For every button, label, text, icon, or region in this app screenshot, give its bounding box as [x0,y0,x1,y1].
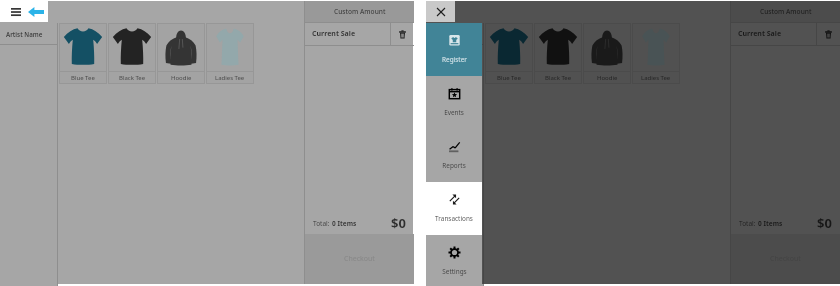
button[interactable]: Hoodie [157,23,205,84]
staticText: Ladies Tee [641,74,671,82]
button[interactable]: Hoodie [583,23,631,84]
staticText: Hoodie [171,74,192,82]
button[interactable]: Events [426,76,482,129]
staticText: Ladies Tee [215,74,245,82]
button[interactable]: Black Tee [108,23,156,84]
button[interactable]: Reports [426,129,482,182]
button[interactable]: Blue Tee [485,23,533,84]
staticText: Artist Name [6,30,43,38]
staticText: Transactions [435,214,473,223]
staticText: Current Sale [738,29,816,39]
staticText: 0 Items [758,219,783,228]
staticText: $0 [817,214,832,232]
staticText: Custom Amount [334,7,386,16]
staticText: $0 [391,214,406,232]
button[interactable]: Transactions [426,182,482,235]
staticText: Hoodie [597,74,618,82]
staticText: Artist Name [432,30,469,38]
staticText: Settings [442,267,467,276]
button[interactable]: Blue Tee [59,23,107,84]
button[interactable]: Artist Name [426,23,483,44]
button[interactable]: Custom Amount [731,1,840,22]
button[interactable]: Close navigation menu [426,1,455,22]
button[interactable]: Ladies Tee [632,23,680,84]
button[interactable]: Register [426,23,482,76]
staticText: Reports [442,161,466,170]
staticText: Total: [739,219,758,228]
staticText: Black Tee [119,74,146,82]
staticText: Blue Tee [71,74,95,82]
staticText: 0 Items [332,219,357,228]
staticText: Current Sale [312,29,390,39]
button[interactable]: Delete sale [817,23,840,45]
button[interactable]: Delete sale [391,23,414,45]
staticText: Custom Amount [760,7,812,16]
button[interactable]: Ladies Tee [206,23,254,84]
button[interactable]: Black Tee [534,23,582,84]
staticText: Total: [313,219,332,228]
staticText: Register [442,55,467,64]
staticText: Events [444,108,464,117]
staticText: Black Tee [545,74,572,82]
staticText: Checkout [344,254,375,264]
staticText: Blue Tee [497,74,521,82]
button[interactable]: Artist Name [0,23,57,44]
button[interactable]: Open navigation menu [4,1,27,22]
button[interactable]: Settings [426,235,482,286]
button[interactable]: Custom Amount [305,1,414,22]
